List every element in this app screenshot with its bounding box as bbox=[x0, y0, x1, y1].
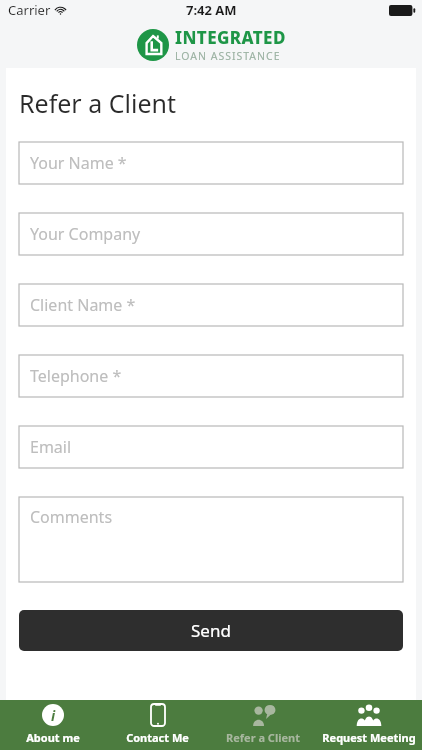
staticText: About me bbox=[26, 730, 80, 745]
other: About me bbox=[42, 704, 64, 726]
other: Contact Me bbox=[151, 704, 165, 726]
staticText: i bbox=[51, 706, 56, 725]
staticText: Contact Me bbox=[126, 730, 189, 745]
staticText: Request Meeting bbox=[322, 730, 416, 745]
staticText: Carrier bbox=[8, 1, 51, 19]
staticText: 7:42 AM bbox=[186, 1, 237, 19]
staticText: Refer a Client bbox=[19, 86, 176, 120]
staticText: Comments bbox=[30, 506, 113, 528]
button[interactable]: Comments bbox=[19, 497, 403, 582]
staticText: Your Name * bbox=[30, 152, 127, 174]
button[interactable]: Client Name * bbox=[19, 284, 403, 326]
staticText: Send bbox=[191, 619, 231, 642]
button[interactable]: Request Meeting bbox=[316, 700, 422, 750]
staticText: Telephone * bbox=[30, 365, 122, 387]
button[interactable]: Send bbox=[19, 610, 403, 651]
staticText: Email bbox=[30, 436, 72, 458]
other: Request Meeting bbox=[355, 704, 383, 726]
staticText: Your Company bbox=[30, 223, 141, 245]
staticText: Client Name * bbox=[30, 294, 136, 316]
button[interactable]: Refer a Client bbox=[210, 700, 316, 750]
other: Refer a Client bbox=[250, 704, 276, 726]
staticText: LOAN ASSISTANCE bbox=[175, 49, 281, 63]
staticText: Refer a Client bbox=[226, 730, 300, 745]
button[interactable]: Your Company bbox=[19, 213, 403, 255]
button[interactable]: Telephone * bbox=[19, 355, 403, 397]
staticText: INTEGRATED bbox=[175, 26, 286, 49]
button[interactable]: About me bbox=[0, 700, 105, 750]
button[interactable]: Contact Me bbox=[105, 700, 210, 750]
button[interactable]: Email bbox=[19, 426, 403, 468]
button[interactable]: Your Name * bbox=[19, 142, 403, 184]
